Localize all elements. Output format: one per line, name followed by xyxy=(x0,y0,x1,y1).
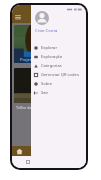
button[interactable]: Exploração xyxy=(31,52,86,61)
button[interactable]: Recent apps xyxy=(23,157,33,167)
button[interactable]: Trilha da Pedra xyxy=(14,68,84,110)
staticText: Sobre xyxy=(41,81,53,87)
button[interactable]: Sobre xyxy=(31,79,86,88)
button[interactable]: Categorias xyxy=(31,61,86,70)
staticText: Exploração xyxy=(41,54,63,60)
button[interactable]: Explorar xyxy=(31,43,86,52)
staticText: Gerenciar QR codes xyxy=(41,72,79,78)
staticText: Criar Conta xyxy=(35,28,58,34)
button[interactable]: Profile picture xyxy=(35,11,49,25)
staticText: Categorias xyxy=(41,63,62,69)
button[interactable]: Home xyxy=(16,148,23,155)
button[interactable]: Projeto xyxy=(14,25,84,63)
staticText: Explorar xyxy=(41,45,58,51)
button[interactable]: Sair xyxy=(31,88,86,97)
staticText: Trilha da Pedra xyxy=(16,105,43,110)
button[interactable]: Gerenciar QR codes xyxy=(31,70,86,79)
button[interactable]: Open navigation menu xyxy=(14,13,22,21)
staticText: Projeto xyxy=(20,57,34,62)
staticText: Sair xyxy=(41,90,49,96)
button[interactable]: Criar Conta xyxy=(35,28,58,34)
